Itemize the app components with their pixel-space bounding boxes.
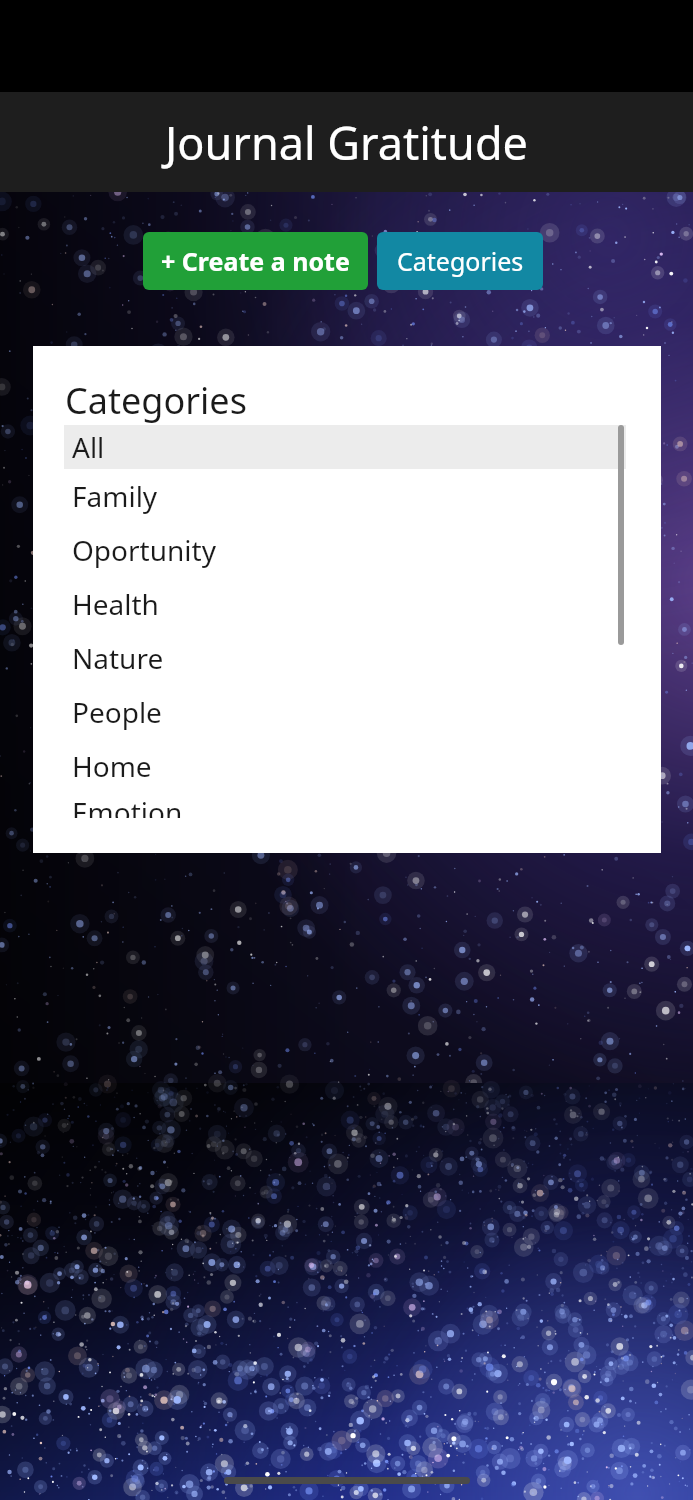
staticText: Emotion [72, 793, 183, 818]
staticText: Home [72, 747, 152, 785]
staticText: Nature [72, 639, 164, 677]
button[interactable]: Home [64, 739, 626, 793]
staticText: Family [72, 477, 158, 515]
button[interactable]: Nature [64, 631, 626, 685]
button[interactable]: All [64, 425, 626, 469]
staticText: Categories [65, 376, 247, 425]
staticText: Journal Gratitude [165, 112, 528, 173]
button[interactable]: Oportunity [64, 523, 626, 577]
staticText: + Create a note [161, 244, 350, 278]
staticText: People [72, 693, 162, 731]
button[interactable]: Emotion [64, 793, 626, 818]
staticText: Oportunity [72, 531, 216, 569]
other: Home [224, 1477, 470, 1484]
button[interactable]: + Create a note [143, 232, 368, 290]
staticText: Categories [397, 244, 524, 278]
staticText: All [72, 428, 105, 466]
button[interactable]: People [64, 685, 626, 739]
button[interactable]: Family [64, 469, 626, 523]
button[interactable]: Health [64, 577, 626, 631]
staticText: Health [72, 585, 159, 623]
button[interactable]: Categories [377, 232, 543, 290]
